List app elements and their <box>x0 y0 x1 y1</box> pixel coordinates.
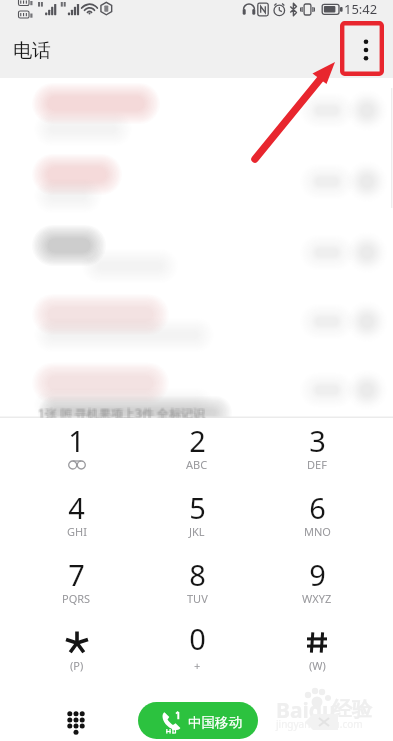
button[interactable]: 9 <box>257 555 377 622</box>
staticText: 1 <box>68 421 85 460</box>
staticText: 1张 照 寻机果项上3件 全标记识 <box>38 406 206 422</box>
staticText: + <box>194 658 201 673</box>
staticText: ABC <box>186 457 208 472</box>
staticText: JKL <box>189 524 205 539</box>
button[interactable]: 0 <box>137 622 257 689</box>
staticText: 4 <box>68 488 85 527</box>
staticText: 中国移动 <box>188 714 242 731</box>
staticText: 2 <box>189 421 206 460</box>
button[interactable]: 6 <box>257 488 377 555</box>
button[interactable]: More options <box>344 28 388 72</box>
staticText: 1张 照 寻机果项上3件 全标记识 <box>37 406 205 422</box>
staticText: 1张 照 寻机果项上3件 全标记识 <box>38 404 206 420</box>
staticText: 5 <box>189 488 206 527</box>
staticText: 经验 <box>332 697 372 722</box>
staticText: 0 <box>189 619 206 658</box>
staticText: 1张 照 寻机果项上3件 全标记识 <box>39 406 207 422</box>
staticText: WXYZ <box>302 591 332 606</box>
staticText: 1张 照 寻机果项上3件 全标记识 <box>37 405 205 421</box>
button[interactable]: 7 <box>16 555 137 622</box>
button[interactable]: 中国移动 <box>138 702 258 739</box>
staticText: 1张 照 寻机果项上3件 全标记识 <box>37 404 205 420</box>
staticText: Baidu <box>276 696 336 725</box>
staticText: (W) <box>309 658 326 673</box>
staticText: 9 <box>309 555 326 594</box>
staticText: 8 <box>189 555 206 594</box>
staticText: GHI <box>67 524 87 539</box>
staticText: 1张 照 寻机果项上3件 全标记识 <box>39 405 207 421</box>
button[interactable]: 4 <box>16 488 137 555</box>
button[interactable]: (W) <box>257 622 377 689</box>
staticText: 1张 照 寻机果项上3件 全标记识 <box>38 405 206 421</box>
staticText: PQRS <box>62 591 91 606</box>
button[interactable]: 2 <box>137 421 257 488</box>
staticText: 电话 <box>13 39 51 63</box>
staticText: 1张 照 寻机果项上3件 全标记识 <box>39 404 207 420</box>
staticText: (P) <box>70 658 84 673</box>
button[interactable]: 8 <box>137 555 257 622</box>
button[interactable]: 1 <box>16 421 137 488</box>
staticText: 15:42 <box>344 0 378 18</box>
button[interactable]: (P) <box>16 622 137 689</box>
staticText: jingyan.baidu.com <box>276 717 363 731</box>
button[interactable]: 5 <box>137 488 257 555</box>
staticText: DEF <box>307 457 327 472</box>
staticText: TUV <box>187 591 208 606</box>
staticText: 3 <box>309 421 326 460</box>
staticText: 6 <box>309 488 326 527</box>
staticText: MNO <box>304 524 331 539</box>
button[interactable]: 3 <box>257 421 377 488</box>
staticText: 7 <box>68 555 85 594</box>
button[interactable]: Keypad <box>54 701 98 741</box>
